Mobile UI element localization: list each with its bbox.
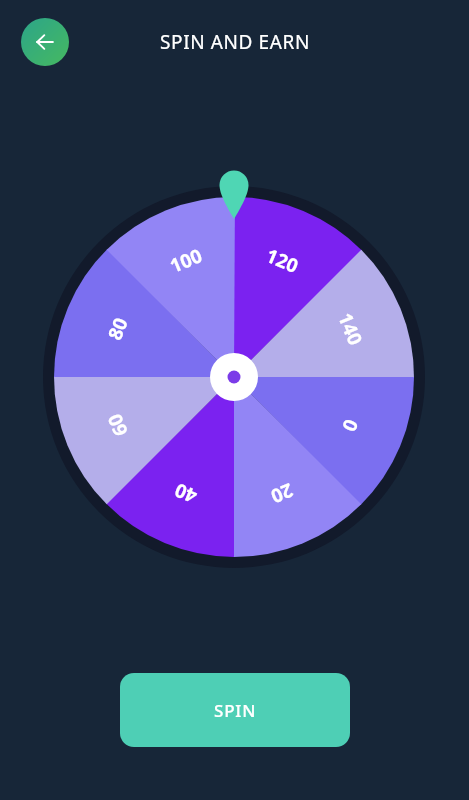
- button[interactable]: Back: [21, 18, 69, 66]
- staticText: SPIN AND EARN: [160, 29, 310, 55]
- button[interactable]: SPIN: [120, 673, 350, 747]
- staticText: SPIN: [214, 699, 257, 722]
